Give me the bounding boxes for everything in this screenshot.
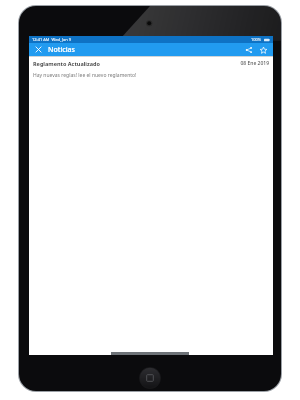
button[interactable]: Share: [243, 44, 255, 56]
staticText: Reglamento Actualizado: [33, 60, 100, 67]
staticText: Hay nuevas reglas! lee el nuevo reglamen…: [33, 72, 137, 79]
button[interactable]: Favorite: [257, 44, 269, 56]
button[interactable]: Close: [33, 44, 44, 55]
staticText: 12:41 AM Wed, Jan 9: [32, 37, 72, 42]
staticText: Noticias: [48, 45, 76, 55]
button[interactable]: Reglamento Actualizado: [29, 57, 273, 82]
staticText: 08 Ene 2019: [240, 60, 269, 67]
button[interactable]: Home: [139, 367, 161, 389]
staticText: 100%: [251, 37, 262, 42]
